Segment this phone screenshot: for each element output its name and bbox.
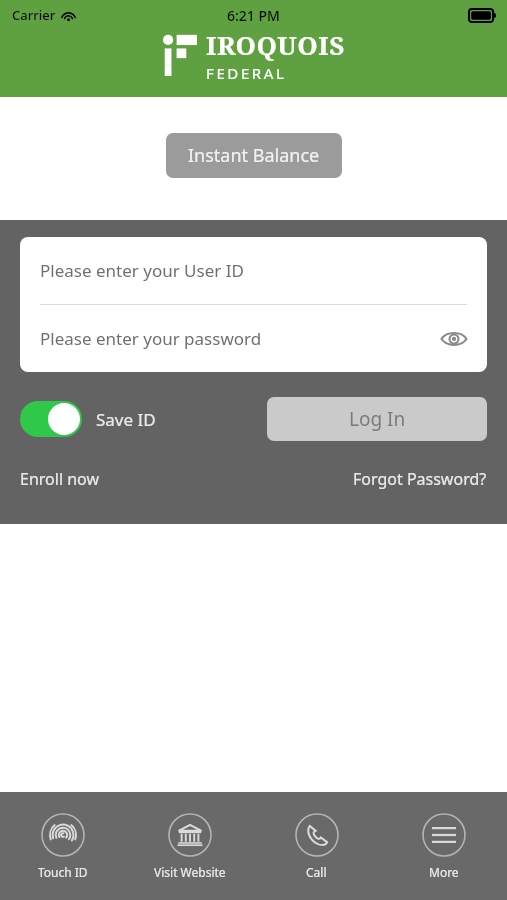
button[interactable]: Call — [253, 792, 380, 900]
button[interactable]: Please enter your password — [20, 305, 487, 372]
staticText: Save ID — [96, 408, 156, 431]
staticText: 6:21 PM — [227, 6, 280, 25]
staticText: Please enter your User ID — [40, 259, 244, 282]
button[interactable]: Show password — [437, 322, 471, 356]
button[interactable]: Touch ID — [0, 792, 126, 900]
staticText: Log In — [349, 406, 406, 432]
staticText: Carrier — [12, 6, 56, 24]
button[interactable]: Forgot Password? — [353, 468, 487, 490]
staticText: Touch ID — [38, 864, 88, 880]
button[interactable]: Save ID — [20, 401, 156, 437]
staticText: FEDERAL — [206, 63, 287, 83]
staticText: Call — [306, 864, 327, 880]
button[interactable]: Please enter your User ID — [20, 237, 487, 304]
staticText: More — [429, 864, 459, 880]
staticText: Forgot Password? — [353, 468, 487, 490]
staticText: Instant Balance — [188, 143, 320, 168]
button[interactable]: Visit Website — [126, 792, 253, 900]
staticText: Enroll now — [20, 468, 99, 490]
button[interactable]: Instant Balance — [166, 133, 342, 178]
button[interactable]: More — [380, 792, 507, 900]
button[interactable]: Log In — [267, 397, 487, 441]
button[interactable]: Enroll now — [20, 468, 99, 490]
staticText: Please enter your password — [40, 327, 262, 350]
staticText: IROQUOIS — [206, 27, 345, 62]
staticText: Visit Website — [154, 864, 226, 880]
